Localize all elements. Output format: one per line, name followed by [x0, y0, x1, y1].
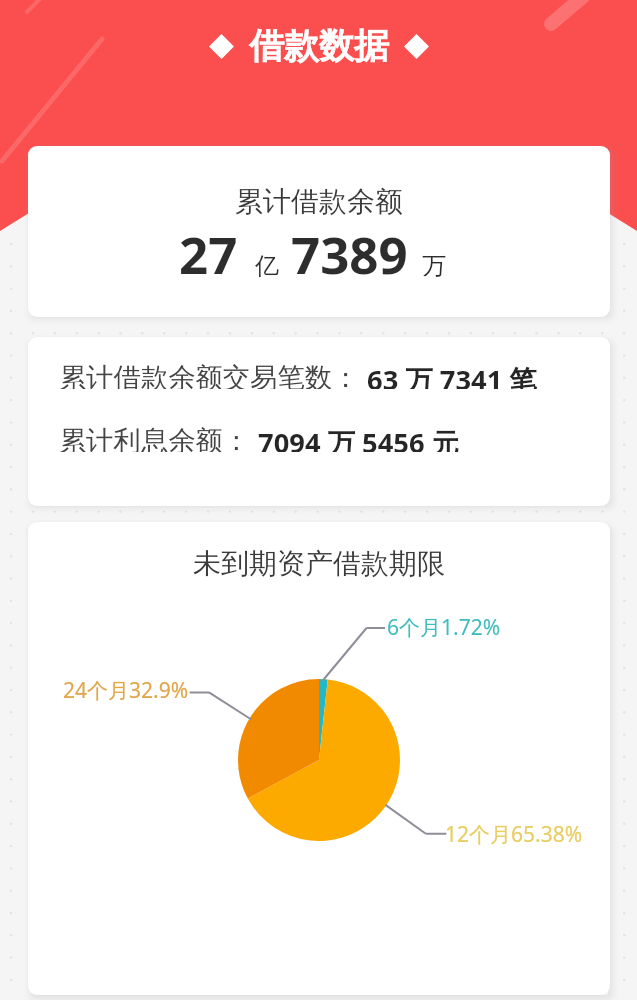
- staticText: 6个月1.72%: [387, 613, 501, 642]
- button[interactable]: 累计借款余额: [28, 146, 610, 317]
- staticText: 累计借款余额交易笔数：: [59, 361, 360, 389]
- staticText: 累计借款余额: [235, 184, 403, 219]
- staticText: 7389: [291, 219, 408, 288]
- button[interactable]: 累计借款余额交易笔数：: [28, 337, 610, 506]
- staticText: 12个月65.38%: [445, 820, 583, 849]
- staticText: 24个月32.9%: [63, 676, 189, 705]
- staticText: 63 万 7341 笔: [360, 361, 537, 389]
- staticText: 借款数据: [249, 24, 389, 68]
- button[interactable]: 未到期资产借款期限: [28, 522, 610, 995]
- staticText: 累计利息余额：: [59, 424, 251, 452]
- staticText: 未到期资产借款期限: [193, 546, 445, 581]
- staticText: 亿: [255, 251, 279, 281]
- staticText: 万: [422, 251, 446, 281]
- staticText: 7094 万 5456 元: [251, 424, 459, 452]
- staticText: 27: [179, 219, 238, 288]
- button[interactable]: 借款数据: [203, 18, 435, 74]
